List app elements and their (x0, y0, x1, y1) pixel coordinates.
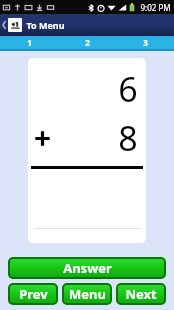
staticText: 8 (118, 115, 138, 161)
staticText: Prev (19, 285, 48, 303)
staticText: 3 (143, 37, 148, 48)
button[interactable]: 1 (0, 36, 58, 49)
staticText: 1 (27, 37, 32, 48)
staticText: 2 (85, 37, 90, 48)
button[interactable]: To Menu, navigate up (0, 14, 174, 36)
staticText: Next (125, 285, 157, 303)
button[interactable]: Menu (62, 283, 112, 305)
staticText: To Menu (26, 19, 65, 31)
staticText: 9:02 PM (140, 2, 171, 13)
staticText: Menu (69, 285, 106, 303)
button[interactable]: Next (116, 283, 166, 305)
button[interactable]: Answer (8, 257, 166, 279)
button[interactable]: 6 (28, 58, 146, 243)
button[interactable]: 3 (116, 36, 174, 49)
staticText: Answer (63, 259, 112, 277)
button[interactable]: 2 (58, 36, 116, 49)
button[interactable]: Prev (8, 283, 58, 305)
staticText: 6 (118, 66, 138, 112)
